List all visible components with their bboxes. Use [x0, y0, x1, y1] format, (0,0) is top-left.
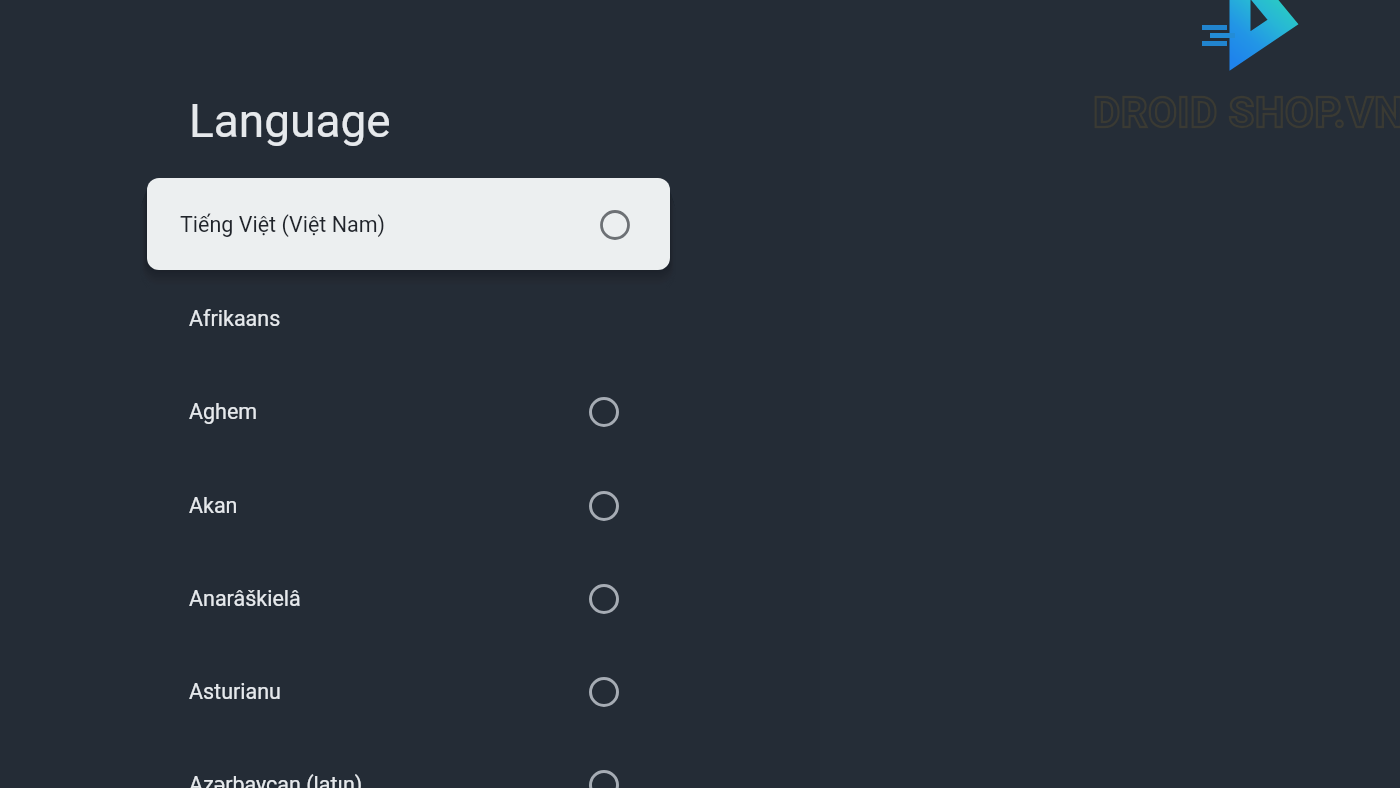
staticText: Asturianu	[189, 679, 569, 704]
other: Select Akan	[587, 489, 621, 523]
staticText: Azərbaycan (latın)	[189, 772, 569, 788]
button[interactable]: Aghem	[147, 365, 669, 458]
button[interactable]: Tiếng Việt (Việt Nam)	[147, 178, 670, 270]
button[interactable]: Azərbaycan (latın)	[147, 738, 669, 788]
staticText: Akan	[189, 493, 569, 518]
other: Select Azərbaycan (latın)	[587, 768, 621, 788]
button[interactable]: Akan	[147, 459, 669, 552]
button[interactable]: Asturianu	[147, 645, 669, 738]
other: Select Anarâškielâ	[587, 582, 621, 616]
other: Droid Shop logo	[1195, 0, 1315, 95]
other: Selected language	[597, 207, 633, 243]
button[interactable]: Afrikaans	[147, 272, 669, 365]
other: Select Asturianu	[587, 675, 621, 709]
other: Select Aghem	[587, 395, 621, 429]
staticText: Afrikaans	[189, 306, 569, 331]
staticText: Tiếng Việt (Việt Nam)	[180, 212, 386, 237]
staticText: Language	[189, 94, 391, 148]
staticText: DROID SHOP.VN	[1093, 88, 1400, 137]
button[interactable]: Anarâškielâ	[147, 552, 669, 645]
staticText: Anarâškielâ	[189, 586, 569, 611]
staticText: Aghem	[189, 399, 569, 424]
